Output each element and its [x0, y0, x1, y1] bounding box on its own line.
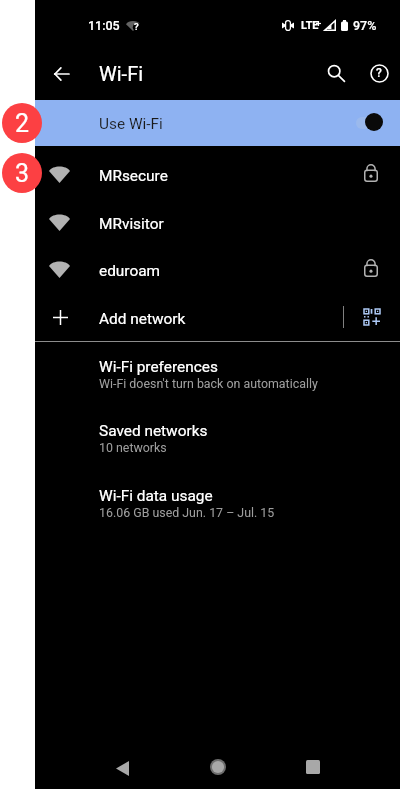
button[interactable]: Wi-Fi data usage	[35, 479, 400, 527]
button[interactable]: Navigate up	[39, 52, 83, 96]
button[interactable]: Wi-Fi preferences	[35, 350, 400, 398]
staticText: 97%	[353, 18, 377, 33]
button[interactable]: MRsecure	[35, 150, 400, 198]
staticText: ?	[134, 21, 139, 32]
staticText: Wi-Fi	[99, 62, 144, 85]
staticText: MRsecure	[99, 167, 168, 185]
staticText: 2	[15, 109, 30, 138]
staticText: 3	[15, 159, 30, 188]
button[interactable]: Back	[98, 744, 146, 789]
button[interactable]: Recent apps	[289, 743, 337, 789]
button[interactable]: MRvisitor	[35, 198, 400, 246]
button[interactable]: Help	[357, 51, 400, 95]
button[interactable]: Search	[314, 51, 358, 95]
staticText: Add network	[99, 310, 186, 328]
button[interactable]: Scan QR code	[355, 300, 389, 334]
staticText: 16.06 GB used Jun. 17 – Jul. 15	[99, 505, 275, 520]
staticText: Saved networks	[99, 422, 208, 440]
staticText: Use Wi-Fi	[99, 115, 163, 133]
staticText: LTE	[301, 19, 319, 32]
button[interactable]: Use Wi-Fi	[354, 107, 384, 137]
staticText: 10 networks	[99, 440, 167, 455]
staticText: eduroam	[99, 262, 161, 280]
button[interactable]: eduroam	[35, 245, 400, 293]
staticText: Wi-Fi doesn't turn back on automatically	[99, 376, 318, 391]
staticText: MRvisitor	[99, 215, 164, 233]
button[interactable]: Saved networks	[35, 414, 400, 462]
staticText: Wi-Fi preferences	[99, 358, 218, 376]
button[interactable]: Use Wi-Fi	[35, 100, 400, 146]
button[interactable]: Home	[194, 743, 242, 789]
staticText: ?	[376, 66, 382, 80]
button[interactable]: Add network	[35, 293, 400, 341]
staticText: Wi-Fi data usage	[99, 487, 213, 505]
staticText: 11:05	[88, 18, 120, 33]
